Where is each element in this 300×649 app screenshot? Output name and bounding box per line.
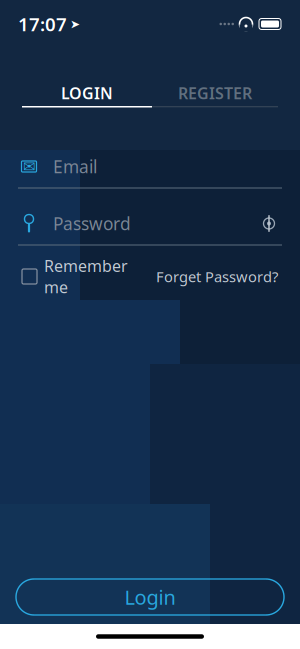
button[interactable]: REGISTER — [152, 80, 278, 106]
staticText: REGISTER — [178, 82, 252, 104]
staticText: Remember me — [44, 255, 128, 298]
staticText: Login — [124, 584, 175, 610]
button[interactable]: Forget Password? — [156, 261, 278, 291]
button[interactable]: LOGIN — [22, 80, 152, 106]
button[interactable]: Show password — [256, 211, 282, 235]
staticText: Password — [53, 212, 131, 235]
button[interactable]: Login — [16, 579, 284, 615]
staticText: ✉ — [23, 158, 35, 175]
staticText: LOGIN — [61, 82, 113, 104]
staticText: ➤ — [70, 17, 80, 31]
staticText: Forget Password? — [156, 267, 278, 286]
staticText: 17:07 — [18, 12, 67, 36]
button[interactable]: Remember me — [22, 261, 128, 291]
staticText: Email — [53, 155, 97, 178]
